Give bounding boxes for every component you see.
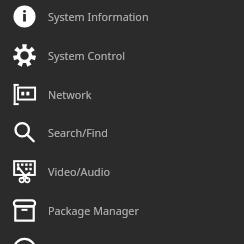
staticText: Package Manager — [48, 203, 139, 218]
button[interactable]: Video and Audio — [0, 152, 244, 190]
button[interactable]: Package Manager — [0, 191, 244, 229]
staticText: System Information — [48, 9, 149, 24]
staticText: Network — [48, 87, 92, 102]
staticText: System Control — [48, 48, 125, 63]
staticText: Video/Audio — [48, 164, 111, 179]
button[interactable]: System Control — [0, 36, 244, 74]
button[interactable]: System Information — [0, 0, 244, 35]
button[interactable]: Power Management — [0, 230, 244, 244]
button[interactable]: Search — [0, 113, 244, 151]
staticText: Search/Find — [48, 125, 108, 140]
button[interactable]: Network — [0, 75, 244, 113]
